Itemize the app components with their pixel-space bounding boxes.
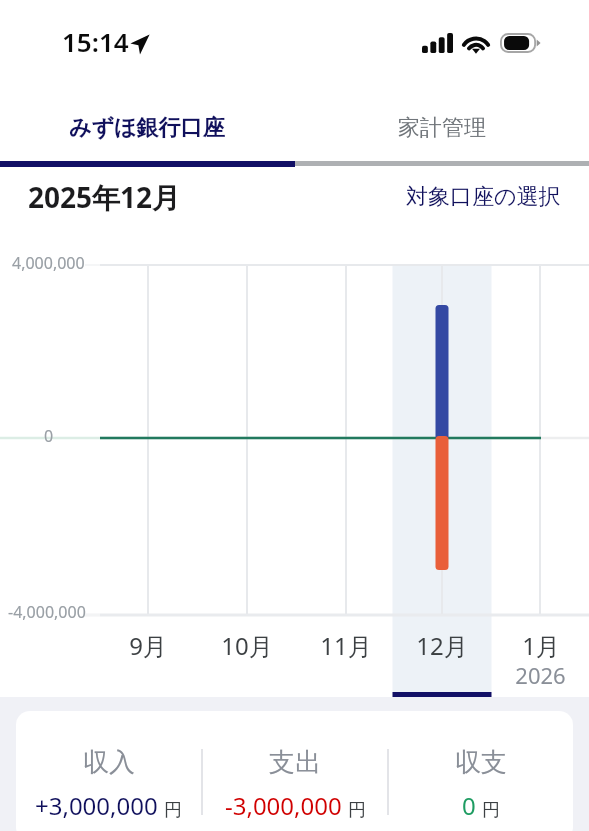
staticText: 円 xyxy=(348,799,366,822)
staticText: 1月 xyxy=(522,629,560,662)
staticText: 2025年12月 xyxy=(28,178,181,216)
staticText: 対象口座の選択 xyxy=(406,183,561,211)
other: Location active xyxy=(130,34,150,55)
staticText: 円 xyxy=(164,799,182,822)
staticText: 0 xyxy=(44,425,54,447)
staticText: 収入 xyxy=(83,746,135,779)
staticText: 15:14 xyxy=(62,24,129,59)
staticText: 支出 xyxy=(269,746,321,779)
staticText: -4,000,000 xyxy=(8,601,86,623)
staticText: 0 xyxy=(462,789,476,822)
button[interactable]: 1月 xyxy=(491,620,589,698)
button[interactable]: 支出 xyxy=(203,711,387,831)
other: Wi-Fi connected xyxy=(463,34,489,53)
staticText: 9月 xyxy=(129,629,167,662)
button[interactable]: 家計管理 xyxy=(294,91,589,164)
button[interactable]: みずほ銀行口座 xyxy=(0,91,294,164)
button[interactable]: 対象口座の選択 xyxy=(406,183,561,211)
staticText: 2026 xyxy=(515,660,566,690)
other: Cellular signal strength xyxy=(422,33,453,53)
staticText: 10月 xyxy=(221,629,273,662)
staticText: 12月 xyxy=(416,629,468,662)
staticText: 家計管理 xyxy=(398,114,486,142)
button[interactable]: 9月 xyxy=(99,620,197,698)
other: Battery xyxy=(500,33,541,53)
staticText: 4,000,000 xyxy=(12,252,85,274)
staticText: みずほ銀行口座 xyxy=(69,114,225,142)
staticText: 円 xyxy=(482,799,500,822)
button[interactable]: 収支 xyxy=(389,711,573,831)
button[interactable]: 収入 xyxy=(16,711,201,831)
button[interactable]: 12月 xyxy=(393,620,491,698)
button[interactable]: 10月 xyxy=(198,620,296,698)
staticText: -3,000,000 xyxy=(225,789,342,822)
staticText: 11月 xyxy=(320,629,372,662)
staticText: 収支 xyxy=(455,746,507,779)
staticText: +3,000,000 xyxy=(35,789,158,822)
button[interactable]: 11月 xyxy=(297,620,395,698)
